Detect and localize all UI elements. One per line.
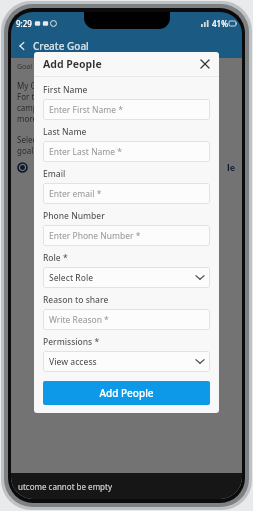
staticText: My Goal For this campaign more [17,80,55,124]
staticText: Select Role [49,272,94,284]
staticText: Permissions * [43,336,100,348]
staticText: Write Reason * [49,314,109,326]
staticText: Email [43,168,66,180]
staticText: 41% [212,18,228,29]
staticText: utcome cannot be empty [18,481,112,492]
staticText: Add People [43,57,102,71]
button[interactable]: View access [43,351,210,372]
staticText: Phone Number [43,210,105,222]
button[interactable]: Write Reason * [43,309,210,330]
staticText: 9:29 [16,18,32,29]
staticText: le [227,161,236,173]
staticText: Enter email * [49,188,102,200]
staticText: Create Goal [33,39,89,53]
button[interactable]: Add People [43,381,210,405]
staticText: Role * [43,252,68,264]
staticText: Enter First Name * [49,104,123,116]
staticText: View access [49,356,97,368]
staticText: Enter Phone Number * [49,230,141,242]
staticText: Goal [17,62,33,72]
button[interactable]: Close [197,56,213,72]
button[interactable]: Select Role [43,267,210,288]
button[interactable]: Enter Phone Number * [43,225,210,246]
staticText: Select goal [17,134,40,156]
staticText: Last Name [43,126,87,138]
button[interactable]: Back [11,35,33,57]
staticText: Reason to share [43,294,109,306]
button[interactable]: Enter email * [43,183,210,204]
button[interactable]: Enter First Name * [43,99,210,120]
staticText: Add People [99,386,154,400]
staticText: Enter Last Name * [49,146,122,158]
staticText: First Name [43,84,88,96]
button[interactable]: Enter Last Name * [43,141,210,162]
